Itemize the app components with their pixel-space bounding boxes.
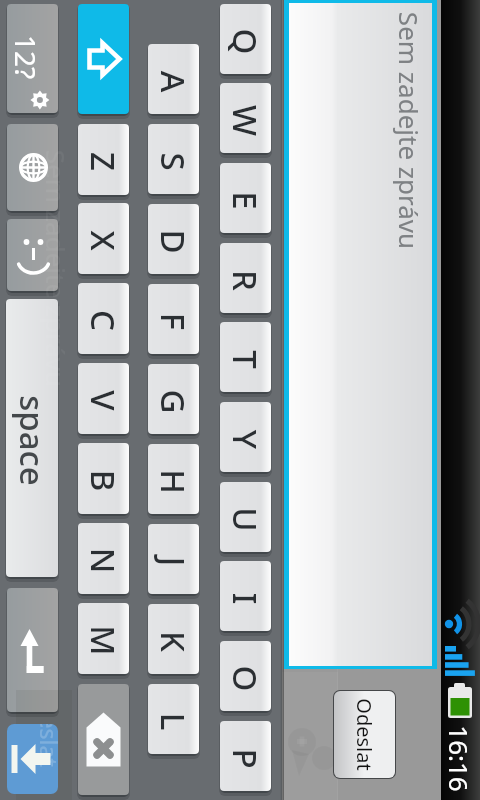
button[interactable]: Change language xyxy=(7,124,58,211)
staticText: S xyxy=(150,129,195,193)
button[interactable] xyxy=(78,363,129,434)
staticText: W xyxy=(222,88,267,152)
button[interactable] xyxy=(6,299,58,577)
button[interactable] xyxy=(78,283,129,354)
button[interactable] xyxy=(148,44,199,114)
staticText: Sem zadejte zprávu xyxy=(38,118,73,418)
button[interactable] xyxy=(78,203,129,274)
button[interactable] xyxy=(78,603,129,674)
button[interactable] xyxy=(220,83,271,153)
button[interactable] xyxy=(220,243,271,313)
button[interactable]: Back xyxy=(7,724,58,794)
staticText: L xyxy=(150,689,195,753)
staticText: K xyxy=(150,609,195,673)
staticText: M xyxy=(80,608,125,672)
staticText: V xyxy=(80,368,125,432)
button[interactable]: Return xyxy=(7,588,58,712)
staticText: Q xyxy=(222,9,267,73)
button[interactable] xyxy=(7,4,58,113)
staticText: 12? xyxy=(7,22,45,92)
staticText: N xyxy=(80,528,125,592)
button[interactable] xyxy=(148,444,199,514)
staticText: X xyxy=(80,208,125,272)
staticText: B xyxy=(80,448,125,512)
staticText: F xyxy=(150,289,195,353)
staticText: Y xyxy=(222,407,267,471)
button[interactable] xyxy=(220,721,271,791)
button[interactable] xyxy=(148,204,199,274)
staticText: Odeslat xyxy=(33,724,58,783)
button[interactable]: Backspace xyxy=(78,684,129,795)
staticText: H xyxy=(150,449,195,513)
button[interactable] xyxy=(220,4,271,74)
button[interactable] xyxy=(220,561,271,631)
button[interactable] xyxy=(78,443,129,514)
button[interactable] xyxy=(220,402,271,472)
button[interactable] xyxy=(220,163,271,233)
button[interactable] xyxy=(289,3,432,666)
button[interactable] xyxy=(148,124,199,194)
button[interactable] xyxy=(220,322,271,392)
staticText: U xyxy=(222,487,267,551)
button[interactable] xyxy=(333,690,396,779)
button[interactable] xyxy=(148,524,199,594)
staticText: R xyxy=(222,248,267,312)
button[interactable] xyxy=(78,523,129,594)
staticText: 16:16 xyxy=(441,708,476,800)
staticText: T xyxy=(222,327,267,391)
button[interactable] xyxy=(148,684,199,754)
button[interactable] xyxy=(78,124,129,195)
button[interactable] xyxy=(148,284,199,354)
staticText: Sem zadejte zprávu xyxy=(391,0,426,280)
staticText: A xyxy=(150,49,195,113)
button[interactable]: Emoji xyxy=(7,219,58,291)
staticText: C xyxy=(80,288,125,352)
button[interactable] xyxy=(220,641,271,711)
staticText: space xyxy=(9,365,54,515)
button[interactable] xyxy=(220,482,271,552)
staticText: G xyxy=(150,369,195,433)
staticText: Odeslat xyxy=(350,684,377,784)
staticText: O xyxy=(222,646,267,710)
staticText: J xyxy=(150,529,195,593)
staticText: P xyxy=(222,726,267,790)
staticText: D xyxy=(150,209,195,273)
staticText: Z xyxy=(80,129,125,193)
staticText: E xyxy=(222,168,267,232)
button[interactable] xyxy=(148,604,199,674)
button[interactable]: Enter xyxy=(78,4,129,114)
button[interactable] xyxy=(148,364,199,434)
staticText: I xyxy=(222,566,267,630)
